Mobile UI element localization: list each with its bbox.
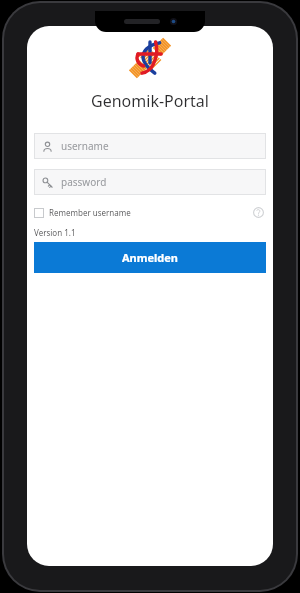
button[interactable]: Help	[250, 204, 266, 220]
button[interactable]: username	[34, 133, 266, 159]
staticText: Genomik-Portal	[27, 90, 273, 112]
button[interactable]: password	[34, 169, 266, 195]
button[interactable]: Anmelden	[34, 242, 266, 273]
other: Genomik logo	[130, 38, 170, 78]
staticText: Anmelden	[122, 250, 179, 265]
staticText: username	[61, 139, 109, 153]
staticText: password	[61, 175, 107, 189]
button[interactable]: Remember username	[34, 206, 131, 219]
staticText: Version 1.1	[34, 227, 76, 238]
staticText: Remember username	[49, 207, 131, 218]
